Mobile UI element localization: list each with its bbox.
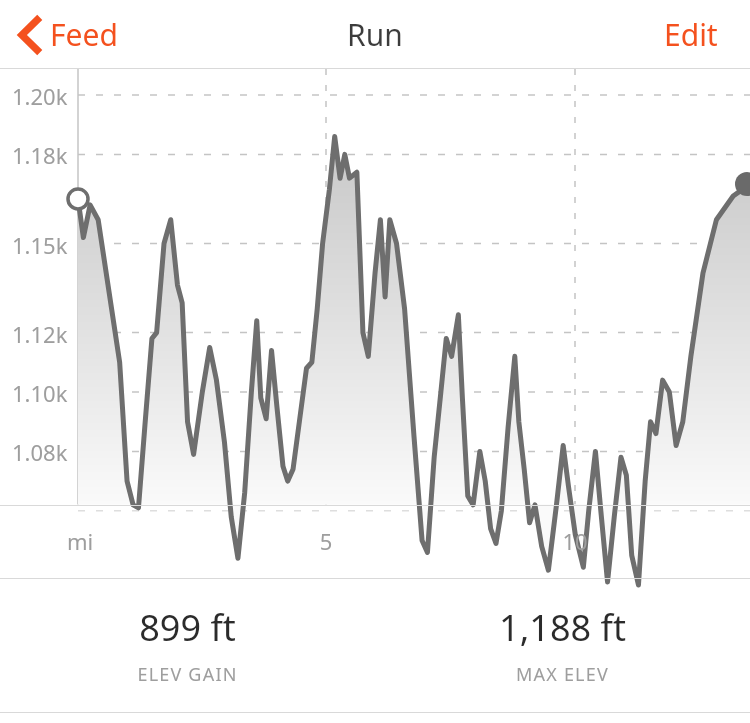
- button[interactable]: Edit: [660, 8, 722, 61]
- staticText: Edit: [664, 14, 718, 55]
- staticText: 1.18k: [12, 140, 68, 170]
- button[interactable]: 1,188 ft: [375, 603, 750, 687]
- staticText: mi: [40, 526, 120, 556]
- button[interactable]: Feed: [14, 8, 122, 61]
- staticText: 5: [286, 526, 366, 556]
- staticText: 10: [535, 526, 615, 556]
- staticText: MAX ELEV: [516, 662, 609, 687]
- staticText: ELEV GAIN: [137, 662, 238, 687]
- staticText: 899 ft: [139, 603, 236, 652]
- staticText: Run: [347, 14, 403, 55]
- staticText: 1.10k: [12, 378, 68, 408]
- staticText: 1.12k: [12, 319, 68, 349]
- button[interactable]: 899 ft: [0, 603, 375, 687]
- staticText: 1.08k: [12, 437, 68, 467]
- staticText: Feed: [50, 14, 118, 55]
- staticText: 1.15k: [12, 230, 68, 260]
- staticText: 1.20k: [12, 81, 68, 111]
- staticText: 1,188 ft: [499, 603, 626, 652]
